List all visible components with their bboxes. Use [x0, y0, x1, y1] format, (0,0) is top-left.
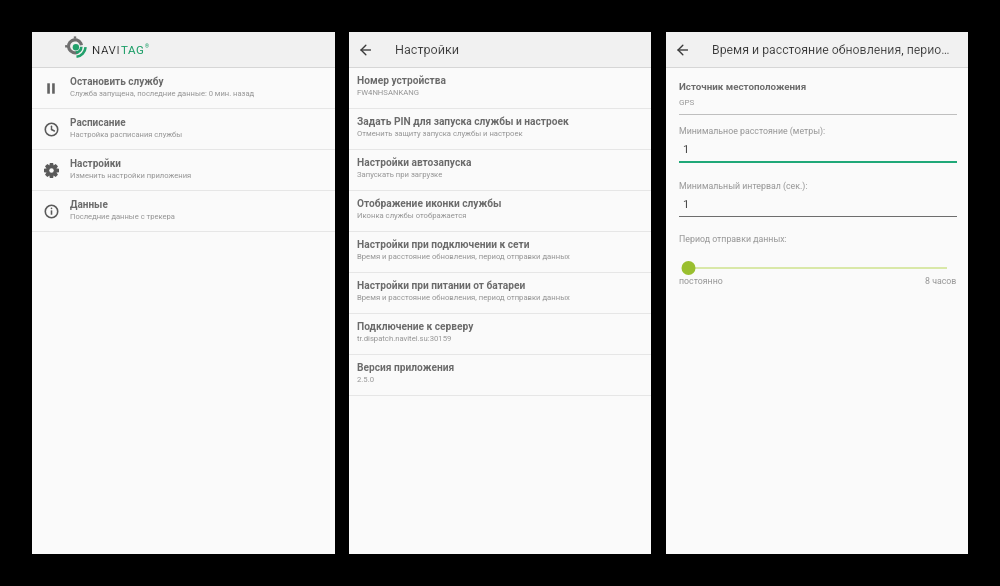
- staticText: Служба запущена, последние данные: 0 мин…: [70, 89, 255, 98]
- staticText: Настройки при питании от батареи: [357, 280, 526, 292]
- staticText: Последние данные с трекера: [70, 212, 175, 221]
- staticText: Запускать при загрузке: [357, 170, 443, 179]
- staticText: tr.dispatch.navitel.su:30159: [357, 334, 452, 343]
- button[interactable]: Данные: [32, 191, 335, 231]
- button[interactable]: Back: [349, 32, 382, 67]
- staticText: Время и расстояние обновления, период от…: [357, 252, 570, 261]
- staticText: Остановить службу: [70, 76, 164, 88]
- staticText: Настройки: [395, 42, 460, 57]
- button[interactable]: Настройки: [32, 150, 335, 190]
- button[interactable]: Расписание: [32, 109, 335, 149]
- button[interactable]: Подключение к серверу: [349, 314, 651, 354]
- staticText: Изменить настройки приложения: [70, 171, 192, 180]
- button[interactable]: Номер устройства: [349, 68, 651, 108]
- staticText: Время и расстояние обновления, перио…: [712, 43, 950, 57]
- button[interactable]: Отображение иконки службы: [349, 191, 651, 231]
- staticText: Подключение к серверу: [357, 321, 474, 333]
- staticText: Задать PIN для запуска службы и настроек: [357, 116, 569, 128]
- staticText: 1: [683, 143, 690, 156]
- staticText: Источник местоположения: [679, 81, 807, 92]
- staticText: TAG: [121, 43, 145, 56]
- staticText: 8 часов: [925, 276, 957, 286]
- button[interactable]: Back: [666, 32, 699, 67]
- staticText: Минимальное расстояние (метры):: [679, 126, 826, 136]
- staticText: Настройки: [70, 158, 121, 170]
- staticText: Данные: [70, 199, 108, 211]
- staticText: GPS: [679, 98, 695, 107]
- staticText: 2.5.0: [357, 375, 375, 384]
- button[interactable]: Задать PIN для запуска службы и настроек: [349, 109, 651, 149]
- staticText: Иконка службы отображается: [357, 211, 467, 220]
- button[interactable]: Остановить службу: [32, 68, 335, 108]
- staticText: FW4NHSANKANG: [357, 88, 419, 97]
- button[interactable]: Настройки при питании от батареи: [349, 273, 651, 313]
- staticText: Отменить защиту запуска службы и настрое…: [357, 129, 523, 138]
- staticText: Настройки автозапуска: [357, 157, 472, 169]
- button[interactable]: Период отправки данных slider: [679, 260, 957, 276]
- staticText: ®: [145, 43, 149, 49]
- staticText: Номер устройства: [357, 75, 446, 87]
- button[interactable]: Настройки при подключении к сети: [349, 232, 651, 272]
- staticText: 1: [683, 198, 690, 211]
- staticText: Версия приложения: [357, 362, 455, 374]
- staticText: постоянно: [679, 276, 723, 286]
- staticText: NAVI: [92, 43, 121, 56]
- staticText: Отображение иконки службы: [357, 198, 502, 210]
- staticText: Расписание: [70, 117, 126, 129]
- staticText: Время и расстояние обновления, период от…: [357, 293, 570, 302]
- staticText: Настройка расписания службы: [70, 130, 183, 139]
- button[interactable]: Настройки автозапуска: [349, 150, 651, 190]
- staticText: Настройки при подключении к сети: [357, 239, 530, 251]
- button[interactable]: Версия приложения: [349, 355, 651, 395]
- staticText: Период отправки данных:: [679, 234, 787, 244]
- staticText: Минимальный интервал (сек.):: [679, 181, 808, 191]
